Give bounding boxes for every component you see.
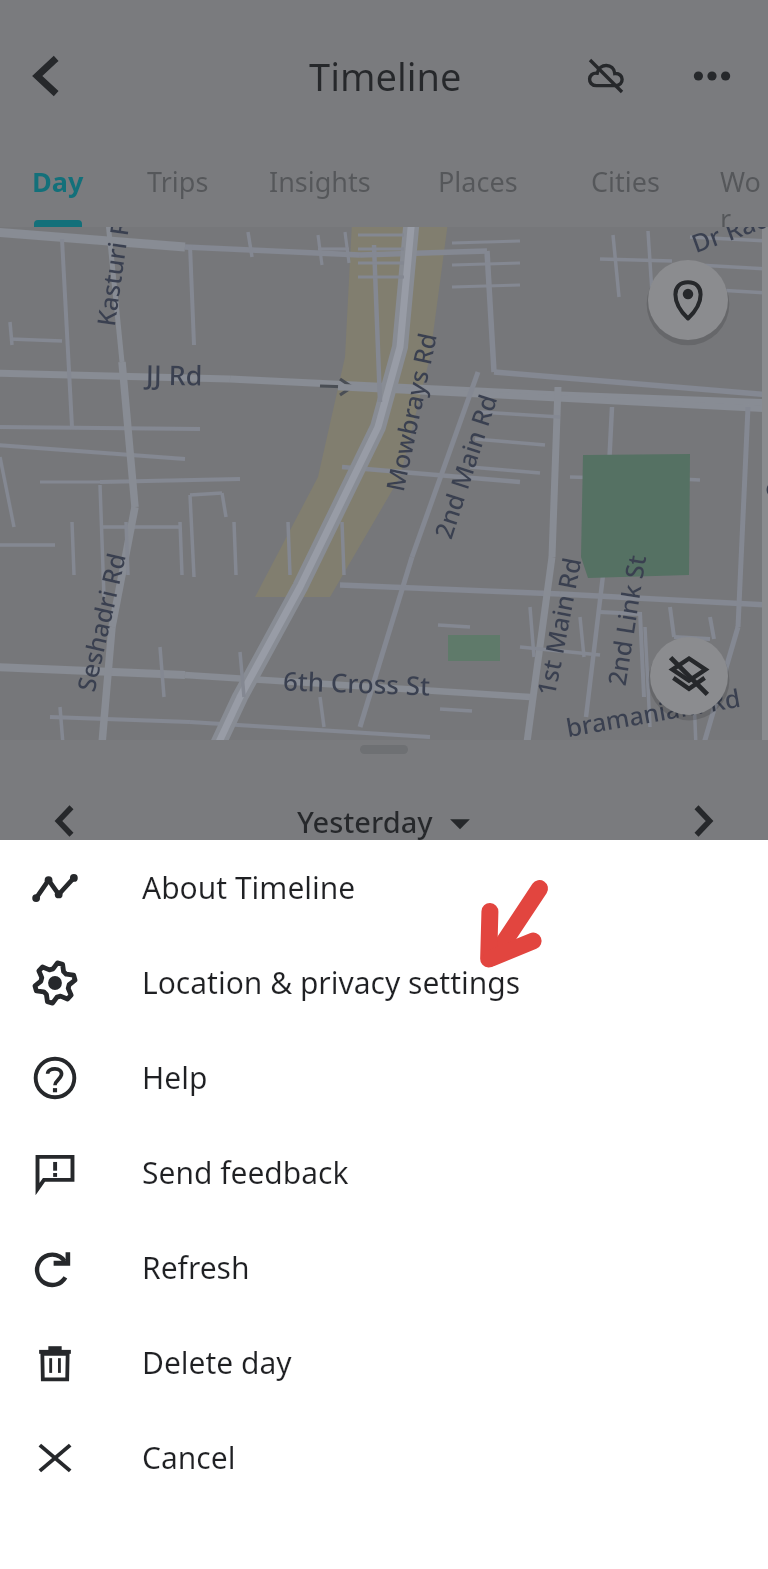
button[interactable]: Map layers off bbox=[650, 637, 728, 715]
staticText: Day bbox=[32, 163, 84, 200]
button[interactable]: About Timeline bbox=[0, 840, 768, 935]
button[interactable]: Cancel bbox=[0, 1410, 768, 1505]
button[interactable]: Offline bbox=[568, 38, 644, 114]
staticText: bramaniam Rd bbox=[563, 680, 744, 744]
staticText: 2nd Link St bbox=[599, 552, 653, 688]
button[interactable]: Previous day bbox=[28, 802, 100, 840]
staticText: JJ Rd bbox=[146, 355, 203, 393]
staticText: Kasturi Rd bbox=[88, 202, 139, 328]
staticText: 1st Main Rd bbox=[528, 554, 589, 698]
staticText: About Timeline bbox=[142, 867, 356, 908]
staticText: Cancel bbox=[142, 1437, 236, 1478]
button[interactable]: Insights bbox=[269, 152, 371, 227]
staticText: 2nd Main Rd bbox=[426, 389, 504, 543]
button[interactable]: Help bbox=[0, 1030, 768, 1125]
staticText: Wor bbox=[720, 163, 768, 227]
staticText: 2nd St bbox=[757, 419, 768, 499]
button[interactable]: Back bbox=[8, 38, 84, 114]
button[interactable]: Yesterday bbox=[72, 802, 696, 840]
staticText: Dr Rad bbox=[687, 200, 768, 260]
button[interactable]: Places bbox=[438, 152, 518, 227]
staticText: Timeline bbox=[309, 50, 462, 102]
staticText: 6th Cross St bbox=[282, 662, 431, 702]
staticText: Seshadri Rd bbox=[68, 549, 133, 694]
staticText: Yesterday bbox=[297, 802, 433, 840]
button[interactable]: Wor bbox=[720, 152, 768, 227]
button[interactable]: Cities bbox=[591, 152, 660, 227]
staticText: Send feedback bbox=[142, 1152, 349, 1193]
staticText: Refresh bbox=[142, 1247, 250, 1288]
button[interactable]: More options bbox=[674, 38, 750, 114]
button[interactable]: Delete day bbox=[0, 1315, 768, 1410]
staticText: Delete day bbox=[142, 1342, 292, 1383]
button[interactable]: Refresh bbox=[0, 1220, 768, 1315]
staticText: Trips bbox=[147, 163, 209, 200]
staticText: Places bbox=[438, 163, 518, 200]
staticText: Cities bbox=[591, 163, 660, 200]
staticText: Insights bbox=[269, 163, 371, 200]
button[interactable]: Send feedback bbox=[0, 1125, 768, 1220]
staticText: Mowbrays Rd bbox=[377, 330, 444, 494]
button[interactable]: Next day bbox=[668, 802, 740, 840]
staticText: Help bbox=[142, 1057, 208, 1098]
button[interactable]: My location bbox=[648, 260, 728, 340]
staticText: Location & privacy settings bbox=[142, 962, 521, 1003]
button[interactable]: Day bbox=[32, 152, 84, 227]
button[interactable]: Trips bbox=[147, 152, 209, 227]
button[interactable]: Location & privacy settings bbox=[0, 935, 768, 1030]
